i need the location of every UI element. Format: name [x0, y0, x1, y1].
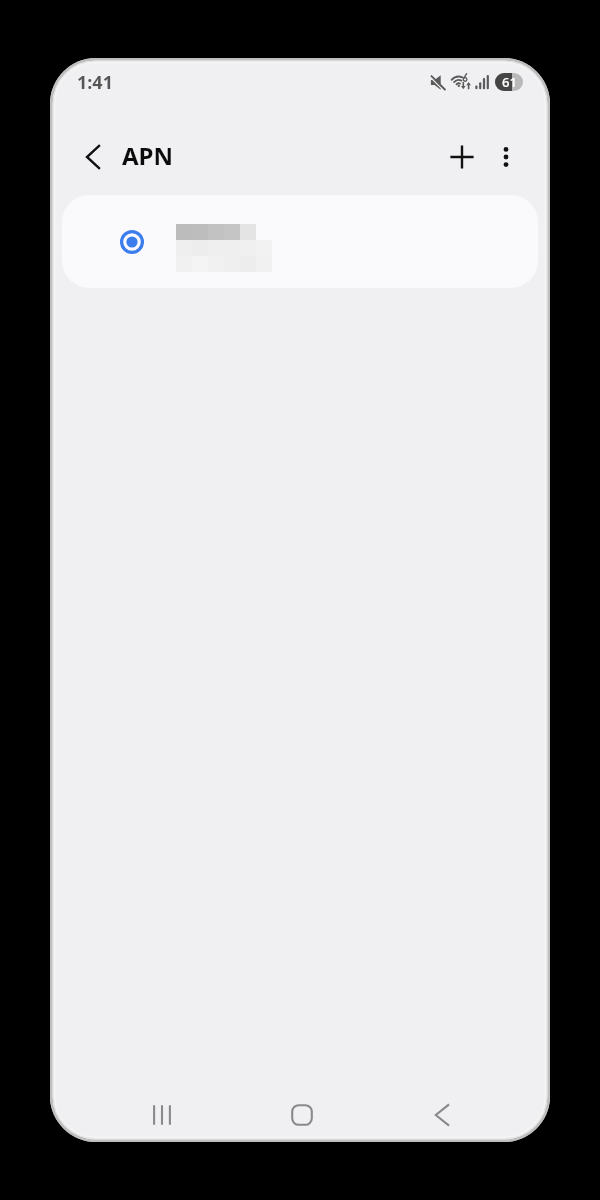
button[interactable]: Recent apps	[138, 1091, 186, 1139]
staticText: APN	[122, 139, 174, 172]
button[interactable]: Back	[69, 133, 117, 181]
button[interactable]: Selected APN profile	[62, 195, 538, 288]
button[interactable]: Add	[438, 133, 486, 181]
staticText: 61	[502, 73, 517, 91]
button[interactable]: Back	[418, 1091, 466, 1139]
staticText: 1:41	[77, 70, 113, 95]
button[interactable]: Home	[278, 1091, 326, 1139]
button[interactable]: More options	[482, 133, 530, 181]
